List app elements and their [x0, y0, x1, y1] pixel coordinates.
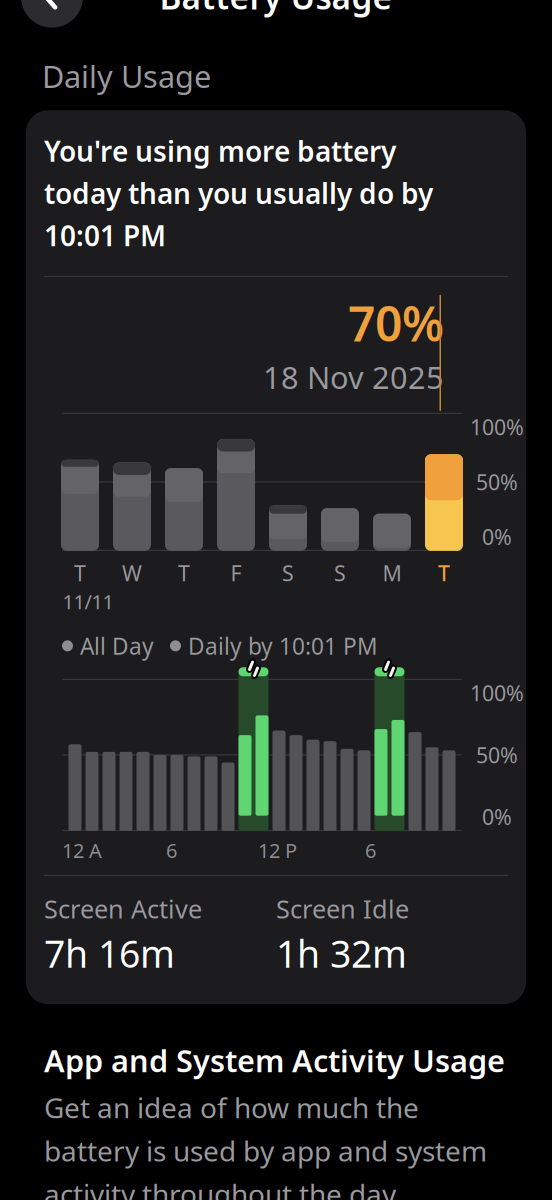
staticText: Screen Idle: [276, 892, 409, 925]
staticText: T: [74, 559, 86, 587]
staticText: Get an idea of how much the battery is u…: [44, 1089, 487, 1200]
staticText: Daily Usage: [42, 56, 211, 96]
staticText: 1h 32m: [276, 928, 407, 978]
staticText: W: [122, 559, 142, 587]
button[interactable]: Back: [21, 0, 83, 28]
staticText: Battery Usage: [159, 0, 392, 19]
staticText: 11/11: [62, 588, 113, 615]
staticText: F: [230, 559, 241, 587]
staticText: 18 Nov 2025: [263, 357, 444, 397]
staticText: S: [334, 559, 346, 587]
staticText: 6: [166, 837, 177, 863]
staticText: All Day: [80, 631, 154, 661]
staticText: 0%: [482, 523, 512, 551]
staticText: 50%: [476, 741, 518, 769]
staticText: T: [438, 559, 450, 587]
staticText: S: [282, 559, 294, 587]
staticText: 7h 16m: [44, 928, 175, 978]
staticText: 12 P: [258, 837, 297, 863]
staticText: Daily by 10:01 PM: [188, 631, 378, 661]
staticText: App and System Activity Usage: [44, 1040, 505, 1081]
staticText: You're using more battery today than you…: [44, 132, 433, 254]
staticText: T: [178, 559, 190, 587]
staticText: M: [382, 559, 401, 587]
staticText: 12 A: [62, 837, 102, 863]
staticText: 0%: [482, 803, 512, 831]
staticText: 70%: [348, 291, 444, 355]
staticText: 50%: [476, 468, 518, 496]
staticText: Screen Active: [44, 892, 202, 925]
staticText: 6: [365, 837, 376, 863]
staticText: 100%: [470, 679, 524, 707]
staticText: 100%: [470, 413, 524, 441]
